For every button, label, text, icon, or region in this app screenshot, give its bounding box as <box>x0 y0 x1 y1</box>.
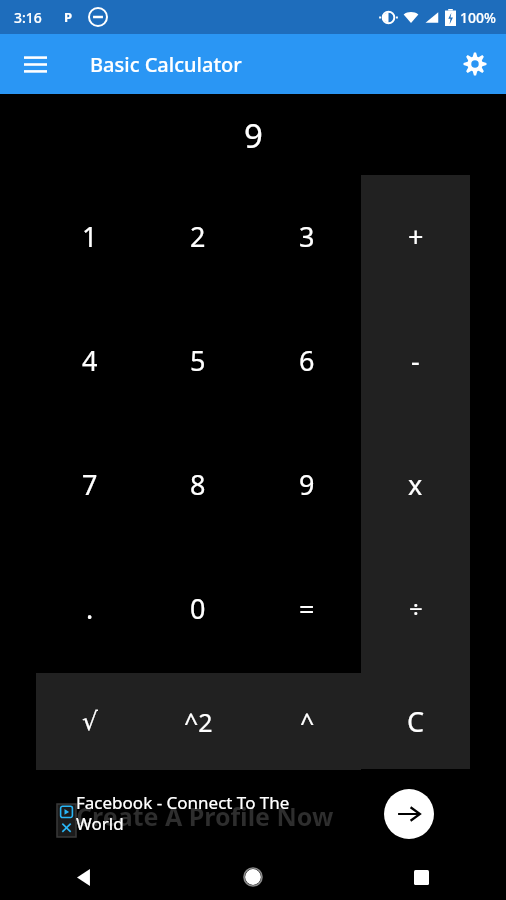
button[interactable]: + <box>361 174 470 298</box>
button[interactable]: 0 <box>144 546 252 670</box>
button[interactable]: Home <box>168 854 337 900</box>
staticText: ÷ <box>409 592 423 625</box>
staticText: 9 <box>299 466 315 503</box>
staticText: Create A Profile Now <box>76 799 334 833</box>
staticText: - <box>411 342 420 379</box>
button[interactable]: √ <box>36 673 144 770</box>
staticText: 2 <box>190 218 206 255</box>
button[interactable]: 4 <box>36 298 144 422</box>
staticText: P <box>64 8 73 26</box>
button[interactable]: - <box>361 298 470 422</box>
button[interactable]: 8 <box>144 422 252 546</box>
staticText: 6 <box>299 342 315 379</box>
staticText: 100% <box>460 8 496 27</box>
staticText: x <box>408 466 423 503</box>
staticText: 0 <box>190 590 206 627</box>
staticText: = <box>299 590 315 627</box>
button[interactable]: Back <box>0 854 168 900</box>
staticText: 9 <box>244 113 263 158</box>
button[interactable]: . <box>36 546 144 670</box>
staticText: 3:16 <box>14 8 42 27</box>
button[interactable]: x <box>361 422 470 546</box>
staticText: ^ <box>300 705 315 739</box>
staticText: 4 <box>82 342 98 379</box>
button[interactable]: Open navigation menu <box>11 40 59 88</box>
staticText: 1 <box>82 218 98 255</box>
staticText: Facebook - Connect To The World <box>76 791 290 835</box>
button[interactable]: 1 <box>36 174 144 298</box>
staticText: 7 <box>82 466 98 503</box>
button[interactable]: ^2 <box>144 673 252 770</box>
button[interactable]: = <box>253 546 361 670</box>
button[interactable]: ^ <box>253 673 361 770</box>
button[interactable]: Create A Profile Now <box>0 774 506 854</box>
button[interactable]: 3 <box>253 174 361 298</box>
button[interactable]: 2 <box>144 174 252 298</box>
button[interactable]: 5 <box>144 298 252 422</box>
button[interactable]: Recent apps <box>337 854 506 900</box>
staticText: + <box>408 218 424 255</box>
button[interactable]: C <box>361 673 470 770</box>
button[interactable]: 7 <box>36 422 144 546</box>
button[interactable]: 6 <box>253 298 361 422</box>
staticText: √ <box>82 707 98 736</box>
staticText: 8 <box>190 466 206 503</box>
staticText: 5 <box>190 342 206 379</box>
staticText: 3 <box>299 218 315 255</box>
button[interactable]: Open ad <box>384 789 434 839</box>
staticText: ^2 <box>184 705 213 739</box>
button[interactable]: 9 <box>253 422 361 546</box>
button[interactable]: Settings <box>451 40 499 88</box>
button[interactable]: ÷ <box>361 546 470 670</box>
staticText: . <box>86 590 94 627</box>
staticText: C <box>407 703 425 740</box>
staticText: Basic Calculator <box>90 51 242 78</box>
